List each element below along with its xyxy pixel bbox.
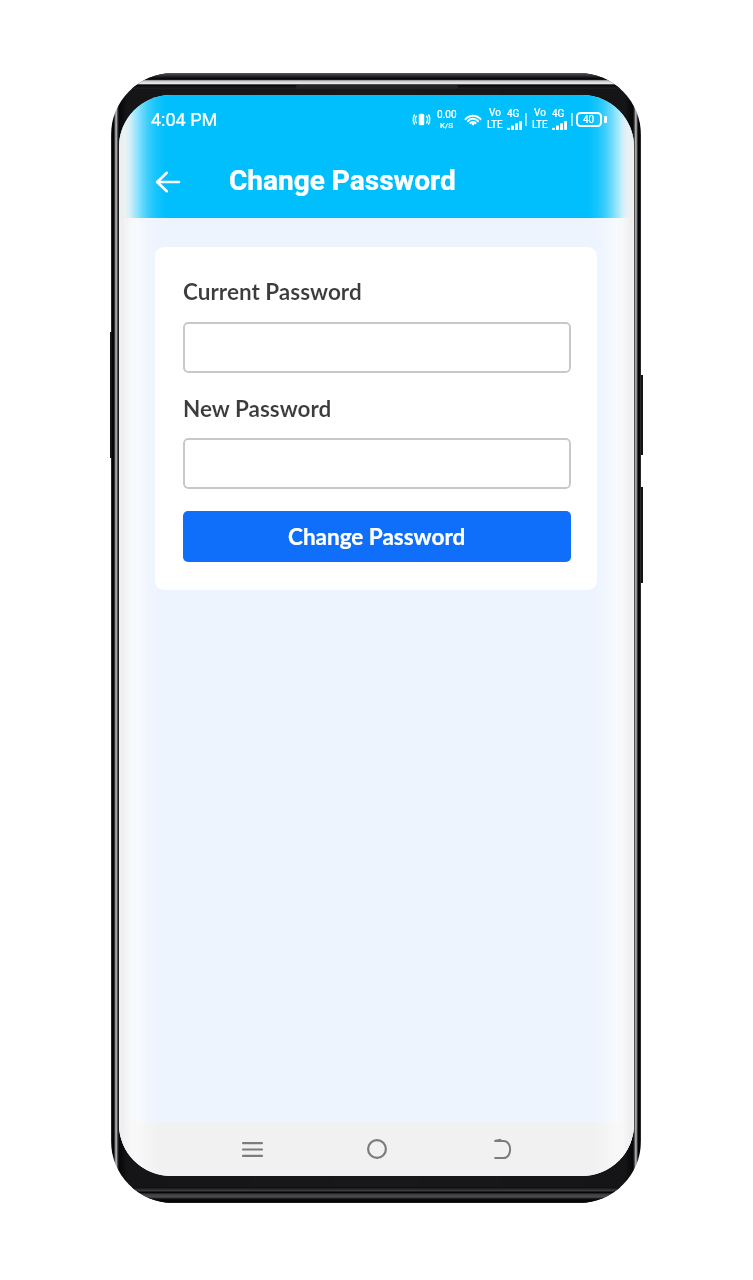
staticText: New Password bbox=[183, 395, 332, 422]
staticText: Vo bbox=[489, 107, 501, 119]
button[interactable]: Recent apps bbox=[225, 1122, 279, 1176]
staticText: Vo bbox=[534, 107, 546, 119]
button[interactable]: Change Password bbox=[183, 511, 571, 562]
staticText: 4:04 PM bbox=[151, 109, 218, 130]
button[interactable]: Back bbox=[475, 1122, 529, 1176]
button[interactable] bbox=[183, 322, 571, 373]
staticText: K/S bbox=[440, 121, 454, 130]
staticText: Change Password bbox=[288, 523, 466, 550]
button[interactable] bbox=[183, 438, 571, 489]
staticText: Change Password bbox=[229, 164, 456, 197]
button[interactable]: Back bbox=[144, 158, 192, 206]
staticText: 0.00 bbox=[437, 109, 457, 121]
staticText: 4G bbox=[552, 108, 565, 120]
staticText: Current Password bbox=[183, 278, 362, 305]
staticText: 4G bbox=[507, 108, 520, 120]
staticText: 40 bbox=[583, 114, 595, 126]
staticText: LTE bbox=[532, 119, 548, 131]
button[interactable]: Home bbox=[350, 1122, 404, 1176]
staticText: LTE bbox=[487, 119, 503, 131]
